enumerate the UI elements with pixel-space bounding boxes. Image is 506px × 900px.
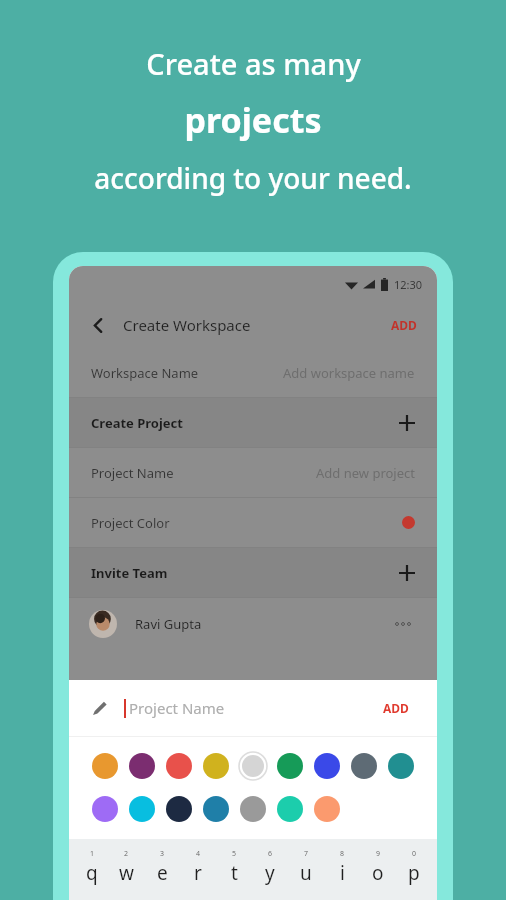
button[interactable]: Ravi Gupta: [69, 598, 437, 650]
button[interactable]: Color swatch: [163, 793, 195, 825]
button[interactable]: Color swatch: [274, 750, 306, 782]
staticText: 2: [124, 849, 129, 859]
staticText: o: [372, 860, 384, 886]
staticText: according to your need.: [94, 159, 412, 197]
button[interactable]: Invite Team: [69, 548, 437, 597]
staticText: Create as many: [146, 44, 361, 83]
staticText: q: [86, 860, 98, 886]
staticText: 4: [196, 849, 201, 859]
button[interactable]: ADD: [385, 311, 423, 339]
staticText: 0: [412, 849, 417, 859]
button[interactable]: 5: [216, 849, 252, 886]
button[interactable]: Create Project: [69, 398, 437, 447]
staticText: Workspace Name: [91, 364, 199, 382]
button[interactable]: ADD: [377, 694, 415, 722]
staticText: Add workspace name: [283, 364, 415, 382]
button[interactable]: Color swatch: [237, 793, 269, 825]
staticText: Create Workspace: [123, 315, 251, 335]
button[interactable]: Color swatch: [385, 750, 417, 782]
button[interactable]: Back: [83, 310, 113, 340]
staticText: w: [119, 860, 134, 886]
button[interactable]: Color swatch: [200, 750, 232, 782]
staticText: Create Project: [91, 414, 183, 432]
staticText: projects: [184, 97, 322, 143]
staticText: 7: [304, 849, 309, 859]
button[interactable]: Color swatch: [126, 793, 158, 825]
button[interactable]: Color swatch: [311, 793, 343, 825]
staticText: 1: [90, 849, 95, 859]
button[interactable]: Color swatch: [200, 793, 232, 825]
button[interactable]: Color swatch: [163, 750, 195, 782]
button[interactable]: Project Color: [69, 498, 437, 547]
staticText: ADD: [383, 700, 409, 716]
staticText: 6: [268, 849, 273, 859]
staticText: Invite Team: [91, 564, 168, 582]
button[interactable]: More options: [391, 618, 415, 630]
staticText: i: [340, 860, 345, 886]
button[interactable]: 4: [180, 849, 216, 886]
staticText: Ravi Gupta: [135, 615, 202, 633]
button[interactable]: 3: [144, 849, 180, 886]
button[interactable]: Color swatch: [274, 793, 306, 825]
staticText: e: [157, 860, 168, 886]
staticText: y: [265, 860, 275, 886]
button[interactable]: Color swatch: [89, 750, 121, 782]
staticText: Project Color: [91, 514, 170, 532]
staticText: r: [194, 860, 202, 886]
staticText: 12:30: [394, 277, 423, 292]
button[interactable]: 1: [74, 849, 109, 886]
button[interactable]: Workspace Name: [69, 348, 437, 397]
staticText: u: [300, 860, 312, 886]
button[interactable]: Project Name: [69, 680, 437, 736]
staticText: Project Name: [91, 464, 174, 482]
button[interactable]: 2: [109, 849, 144, 886]
staticText: 5: [232, 849, 237, 859]
button[interactable]: Color swatch: [311, 750, 343, 782]
staticText: ADD: [391, 317, 417, 333]
button[interactable]: Color swatch: [126, 750, 158, 782]
button[interactable]: 8: [324, 849, 360, 886]
staticText: 9: [376, 849, 381, 859]
button[interactable]: 0: [396, 849, 432, 886]
button[interactable]: 7: [288, 849, 324, 886]
button[interactable]: 6: [252, 849, 288, 886]
button[interactable]: Color swatch: [348, 750, 380, 782]
staticText: 3: [160, 849, 165, 859]
button[interactable]: 9: [360, 849, 396, 886]
button[interactable]: Color swatch: [89, 793, 121, 825]
staticText: Add new project: [316, 464, 415, 482]
staticText: p: [408, 860, 420, 886]
staticText: 8: [340, 849, 345, 859]
button[interactable]: Color swatch: [237, 750, 269, 782]
staticText: t: [231, 860, 238, 886]
button[interactable]: Project Name: [69, 448, 437, 497]
staticText: Project Name: [129, 698, 225, 718]
